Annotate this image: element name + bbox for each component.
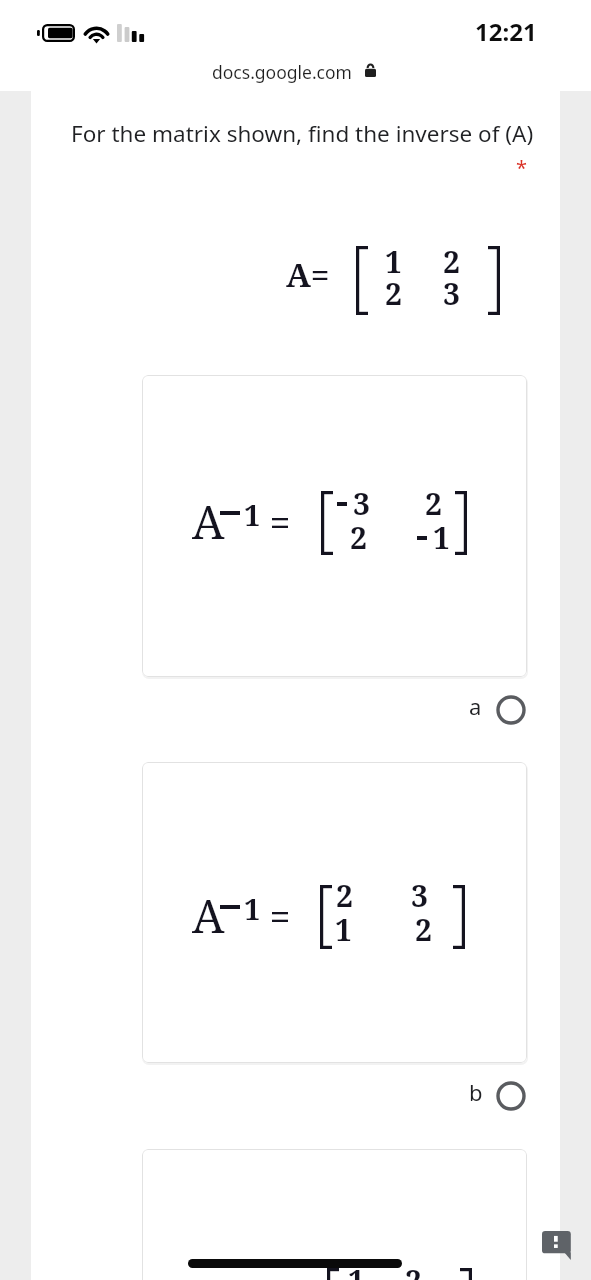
staticText: 1 — [348, 1260, 365, 1280]
staticText: 1 — [385, 241, 402, 282]
button[interactable] — [142, 762, 527, 1063]
staticText: 1 — [244, 495, 261, 534]
button[interactable]: Report a problem — [536, 1219, 576, 1259]
staticText: 3 — [443, 273, 460, 314]
staticText: 2 — [405, 1260, 422, 1280]
staticText: 2 — [425, 483, 442, 524]
staticText: 2 — [350, 517, 367, 558]
staticText: 1 — [335, 909, 352, 950]
button[interactable]: Select option b — [494, 1079, 528, 1113]
staticText: 2 — [385, 273, 402, 314]
staticText: * — [516, 154, 528, 181]
staticText: 2 — [443, 241, 460, 282]
staticText: docs.google.com — [212, 60, 352, 84]
button[interactable]: Select option a — [494, 693, 528, 727]
button[interactable] — [142, 1149, 527, 1280]
staticText: 2 — [336, 875, 353, 916]
staticText: 3 — [411, 875, 428, 916]
staticText: 1 — [244, 889, 261, 928]
staticText: A — [192, 884, 225, 947]
staticText: 1 — [433, 517, 450, 558]
button[interactable] — [142, 375, 527, 677]
staticText: 12:21 — [475, 15, 537, 48]
staticText: a — [469, 691, 482, 721]
staticText: For the matrix shown, find the inverse o… — [71, 118, 534, 149]
staticText: A — [192, 490, 225, 553]
staticText: b — [469, 1077, 483, 1107]
staticText: A= — [286, 252, 330, 297]
staticText: 2 — [415, 909, 432, 950]
staticText: 3 — [353, 483, 370, 524]
